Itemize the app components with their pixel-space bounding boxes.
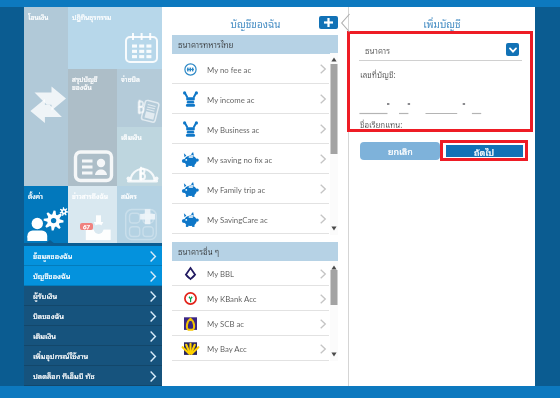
staticText: My SavingCare ac xyxy=(207,215,320,224)
button[interactable]: เติมเงิน xyxy=(117,127,162,186)
button[interactable]: เติมเงิน xyxy=(24,326,162,346)
staticText: บัญชีของฉัน xyxy=(33,270,71,282)
button[interactable]: ยกเลิก xyxy=(360,142,440,160)
staticText: My BBL xyxy=(207,269,320,278)
staticText: บัญชีของฉัน xyxy=(162,15,349,31)
button[interactable]: My KBank Acc xyxy=(172,286,329,311)
staticText: เลขที่บัญชี: xyxy=(360,68,396,81)
staticText: ชื่อเรียกแทน: xyxy=(360,118,403,131)
button[interactable]: ปฏิทินธุรกรรม xyxy=(68,7,162,69)
button[interactable]: ผู้รับเงิน xyxy=(24,286,162,306)
staticText: My income ac xyxy=(207,95,320,104)
staticText: My Family trip ac xyxy=(207,185,320,194)
button[interactable]: My Business ac xyxy=(172,114,329,144)
staticText: เติมเงิน xyxy=(33,330,56,342)
staticText: ข้อมูลของฉัน xyxy=(33,250,73,262)
staticText: ผู้รับเงิน xyxy=(33,290,58,302)
staticText: เพิ่มบัญชี xyxy=(349,15,535,31)
button[interactable]: My income ac xyxy=(172,84,329,114)
button[interactable]: My saving no fix ac xyxy=(172,144,329,174)
button[interactable]: ถัดไป xyxy=(446,145,523,157)
staticText: สรุปบัญชี ของฉัน xyxy=(72,73,98,92)
button[interactable]: Collapse panel xyxy=(341,14,350,32)
staticText: ธนาคารทหารไทย xyxy=(178,38,234,51)
staticText: 67 xyxy=(83,223,90,230)
button[interactable]: สมัคร xyxy=(117,186,162,243)
staticText: ปลดล็อก ทีเอ็มบี ทัช xyxy=(33,370,95,382)
button[interactable]: โอนเงิน xyxy=(24,7,68,186)
button[interactable]: สรุปบัญชี ของฉัน xyxy=(68,69,117,186)
button[interactable]: My Family trip ac xyxy=(172,174,329,204)
staticText: My KBank Acc xyxy=(207,294,320,303)
button[interactable]: บิลของฉัน xyxy=(24,306,162,326)
staticText: เพิ่มอุปกรณ์ใช้งาน xyxy=(33,350,89,362)
button[interactable]: Select bank xyxy=(506,43,519,56)
staticText: สมัคร xyxy=(121,190,137,201)
staticText: ปฏิทินธุรกรรม xyxy=(72,11,112,22)
staticText: My saving no fix ac xyxy=(207,155,320,164)
button[interactable]: My BBL xyxy=(172,261,329,286)
button[interactable]: My Bay Acc xyxy=(172,336,329,361)
staticText: บิลของฉัน xyxy=(33,310,64,322)
button[interactable]: ตั้งค่า xyxy=(24,186,68,243)
staticText: โอนเงิน xyxy=(28,11,49,22)
button[interactable]: ปลดล็อก ทีเอ็มบี ทัช xyxy=(24,366,162,386)
button[interactable]: เพิ่มอุปกรณ์ใช้งาน xyxy=(24,346,162,366)
staticText: เติมเงิน xyxy=(121,131,142,142)
button[interactable]: ข่าวสารถึงฉัน xyxy=(68,186,117,243)
button[interactable]: Add account xyxy=(319,16,338,29)
button[interactable]: Scroll xyxy=(330,261,338,361)
staticText: My no fee ac xyxy=(207,65,320,74)
staticText: ตั้งค่า xyxy=(28,190,43,201)
staticText: ข่าวสารถึงฉัน xyxy=(72,190,108,201)
button[interactable]: Scroll xyxy=(330,53,338,235)
button[interactable]: ข้อมูลของฉัน xyxy=(24,246,162,266)
staticText: My SCB ac xyxy=(207,319,320,328)
staticText: My Business ac xyxy=(207,125,320,134)
button[interactable]: My SCB ac xyxy=(172,311,329,336)
staticText: ธนาคาร xyxy=(365,44,391,57)
staticText: ธนาคารอื่น ๆ xyxy=(178,245,220,258)
button[interactable]: จ่ายบิล xyxy=(117,69,162,127)
button[interactable]: บัญชีของฉัน xyxy=(24,266,162,286)
button[interactable]: My no fee ac xyxy=(172,54,329,84)
staticText: จ่ายบิล xyxy=(121,73,140,84)
staticText: ถัดไป xyxy=(474,145,495,157)
staticText: ยกเลิก xyxy=(388,144,413,158)
staticText: My Bay Acc xyxy=(207,344,320,353)
button[interactable]: My SavingCare ac xyxy=(172,204,329,234)
